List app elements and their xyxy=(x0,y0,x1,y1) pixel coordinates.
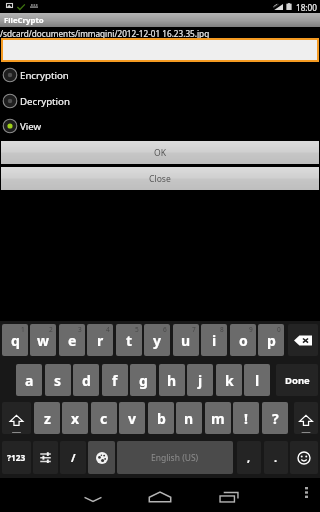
button[interactable]: Shift xyxy=(294,402,318,434)
button[interactable]: m xyxy=(205,402,231,434)
button[interactable]: x xyxy=(62,402,88,434)
staticText: ?123 xyxy=(7,452,26,463)
button[interactable]: s xyxy=(45,364,71,396)
staticText: r xyxy=(97,331,104,350)
button[interactable]: l xyxy=(244,364,270,396)
staticText: h xyxy=(167,371,177,390)
button[interactable]: FileCrypto xyxy=(0,13,320,27)
button[interactable]: a xyxy=(16,364,42,396)
button[interactable]: / xyxy=(60,441,86,474)
staticText: k xyxy=(225,371,234,390)
button[interactable]: Space xyxy=(117,441,233,474)
button[interactable]: Recent apps xyxy=(213,483,245,507)
staticText: ! xyxy=(244,409,248,428)
staticText: n xyxy=(184,409,194,428)
button[interactable]: g xyxy=(130,364,156,396)
staticText: /sdcard/documents/immagini/2012-12-01 16… xyxy=(0,28,210,39)
staticText: 7 xyxy=(192,325,196,334)
button[interactable]: h xyxy=(159,364,185,396)
staticText: 5 xyxy=(135,325,139,334)
button[interactable]: ! xyxy=(233,402,259,434)
staticText: c xyxy=(100,409,108,428)
button[interactable]: OK xyxy=(1,141,319,164)
button[interactable]: Symbols xyxy=(33,441,58,474)
staticText: l xyxy=(255,371,260,390)
staticText: a xyxy=(25,371,34,390)
staticText: o xyxy=(239,331,248,350)
staticText: English (US) xyxy=(151,452,199,464)
button[interactable]: ?123 xyxy=(2,441,31,474)
button[interactable]: r xyxy=(87,324,113,356)
button[interactable]: p xyxy=(258,324,284,356)
button[interactable]: o xyxy=(230,324,256,356)
button[interactable]: . xyxy=(264,441,288,474)
staticText: 18:00 xyxy=(296,2,317,13)
staticText: ? xyxy=(272,409,279,428)
staticText: View xyxy=(20,120,42,133)
button[interactable]: Done xyxy=(276,364,318,396)
staticText: j xyxy=(198,371,203,390)
staticText: Encryption xyxy=(20,69,69,82)
button[interactable]: Change language xyxy=(88,441,115,474)
staticText: v xyxy=(128,409,136,428)
button[interactable]: e xyxy=(59,324,85,356)
button[interactable]: u xyxy=(173,324,199,356)
button[interactable]: y xyxy=(144,324,170,356)
staticText: 3 xyxy=(78,325,82,334)
button[interactable]: n xyxy=(176,402,202,434)
staticText: , xyxy=(247,450,251,465)
button[interactable]: Hide keyboard xyxy=(77,483,109,507)
button[interactable]: z xyxy=(34,402,60,434)
button[interactable]: c xyxy=(91,402,117,434)
staticText: s xyxy=(54,371,62,390)
button[interactable]: Home xyxy=(144,483,176,507)
staticText: i xyxy=(212,331,217,350)
staticText: g xyxy=(139,371,148,390)
staticText: . xyxy=(274,450,278,465)
button[interactable]: b xyxy=(148,402,174,434)
staticText: 4 xyxy=(106,325,110,334)
button[interactable]: q xyxy=(2,324,28,356)
staticText: Done xyxy=(285,374,310,387)
staticText: d xyxy=(82,371,91,390)
staticText: m xyxy=(211,409,225,428)
button[interactable]: k xyxy=(216,364,242,396)
staticText: 9 xyxy=(249,325,253,334)
button[interactable]: Shift xyxy=(2,402,31,434)
staticText: u xyxy=(181,331,191,350)
button[interactable]: Emoji xyxy=(290,441,318,474)
button[interactable]: , xyxy=(237,441,261,474)
button[interactable]: w xyxy=(30,324,56,356)
staticText: b xyxy=(157,409,166,428)
staticText: FileCrypto xyxy=(4,15,44,26)
staticText: w xyxy=(37,331,49,350)
staticText: e xyxy=(68,331,77,350)
staticText: q xyxy=(11,331,20,350)
button[interactable]: Encryption xyxy=(0,62,320,88)
button[interactable]: Decryption xyxy=(0,88,320,114)
staticText: 1 xyxy=(21,325,25,334)
staticText: / xyxy=(71,450,76,465)
button[interactable]: j xyxy=(187,364,213,396)
staticText: 6 xyxy=(163,325,167,334)
button[interactable]: f xyxy=(102,364,128,396)
staticText: p xyxy=(267,331,276,350)
staticText: 0 xyxy=(277,325,281,334)
staticText: z xyxy=(44,409,51,428)
button[interactable]: View xyxy=(0,113,320,139)
staticText: Decryption xyxy=(20,95,70,108)
button[interactable]: Close xyxy=(1,167,319,190)
button[interactable]: t xyxy=(116,324,142,356)
button[interactable]: i xyxy=(201,324,227,356)
button[interactable]: d xyxy=(73,364,99,396)
button[interactable]: ? xyxy=(262,402,288,434)
staticText: t xyxy=(126,331,133,350)
staticText: 2 xyxy=(49,325,53,334)
staticText: 8 xyxy=(220,325,224,334)
button[interactable]: v xyxy=(119,402,145,434)
button[interactable]: More options xyxy=(296,482,316,502)
staticText: y xyxy=(153,331,161,350)
staticText: OK xyxy=(154,147,167,159)
button[interactable]: Backspace xyxy=(288,324,318,356)
